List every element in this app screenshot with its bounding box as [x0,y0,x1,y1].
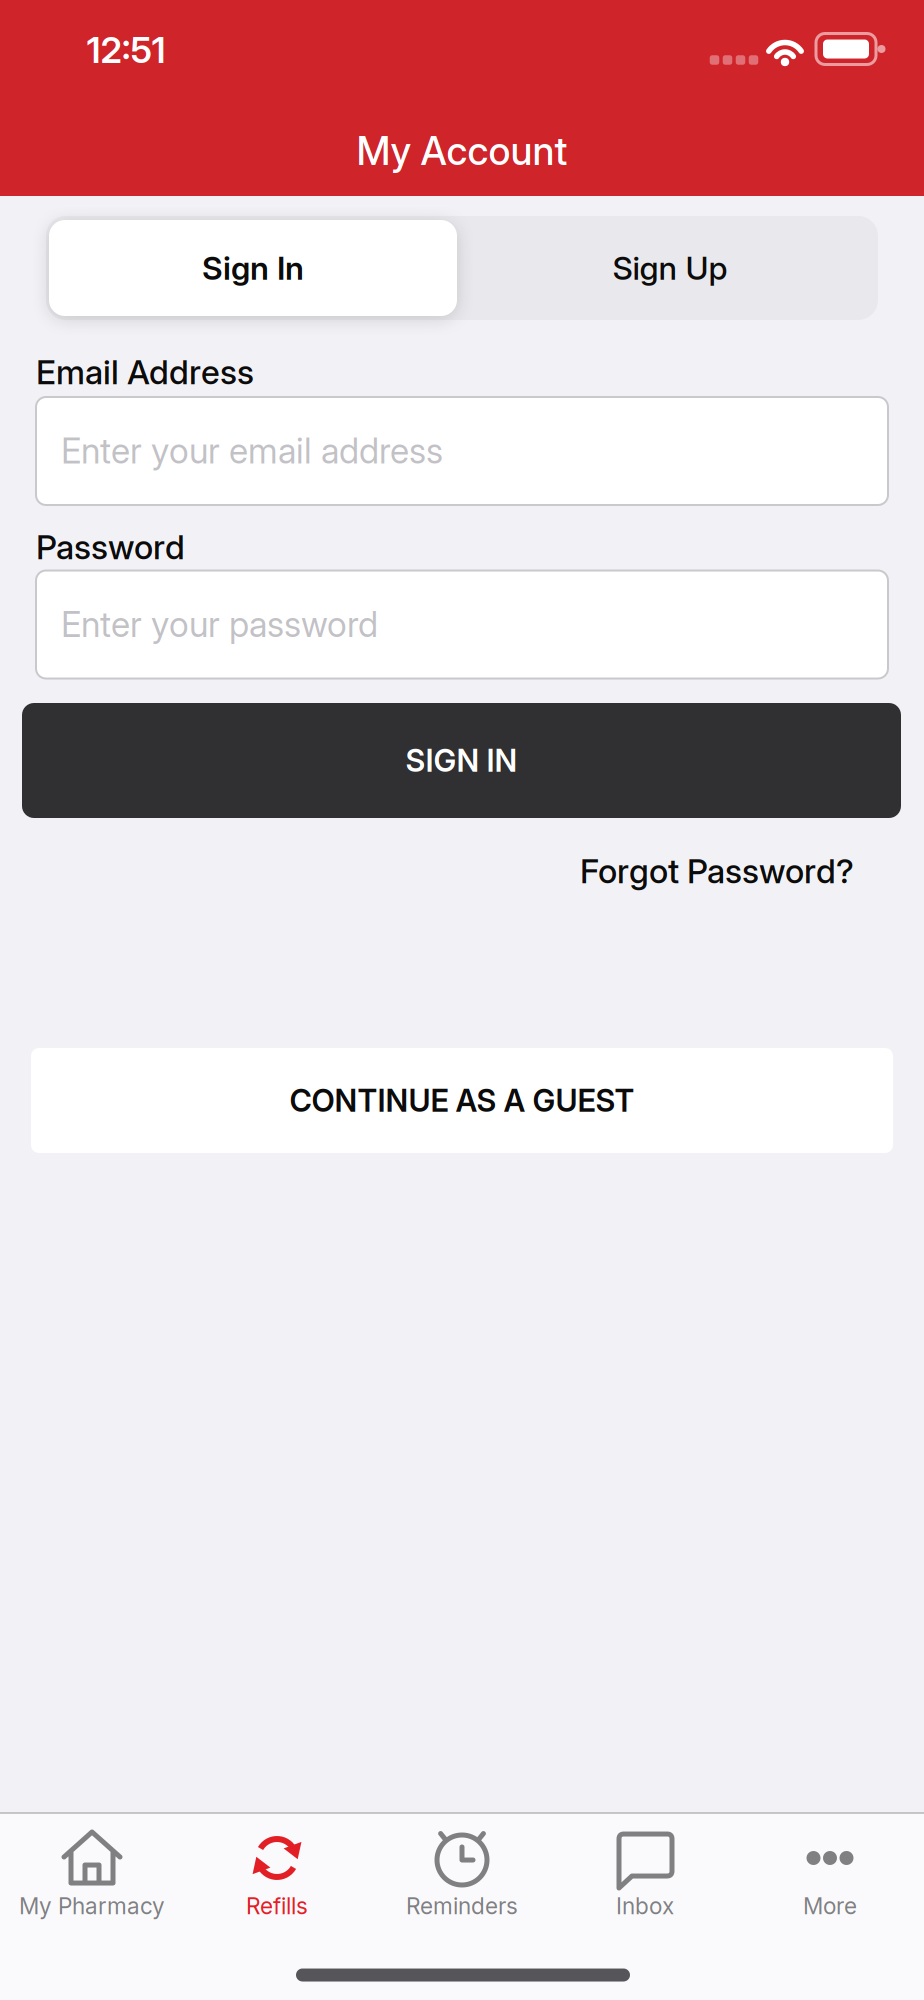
staticText: My Pharmacy [19,1892,165,1920]
staticText: Reminders [406,1892,518,1920]
staticText: More [803,1892,857,1920]
button[interactable]: SIGN IN [22,703,901,818]
staticText: Forgot Password? [580,851,854,891]
staticText: Password [36,527,185,567]
button[interactable]: Forgot Password? [580,851,854,891]
staticText: Email Address [36,352,254,392]
button[interactable]: My Pharmacy [3,1824,181,1932]
staticText: Inbox [616,1892,674,1920]
staticText: Refills [246,1892,308,1920]
staticText: SIGN IN [405,742,517,779]
staticText: 12:51 [86,28,165,72]
button[interactable]: Sign In [49,220,457,316]
button[interactable]: Refills [188,1824,366,1932]
button[interactable]: Inbox [556,1824,734,1932]
staticText: Enter your password [61,603,378,645]
button[interactable]: More [741,1824,919,1932]
staticText: Sign In [202,249,304,287]
staticText: CONTINUE AS A GUEST [289,1082,634,1119]
button[interactable]: Reminders [373,1824,551,1932]
staticText: Sign Up [612,249,727,287]
staticText: Enter your email address [61,430,443,472]
button[interactable]: Sign Up [462,216,878,320]
button[interactable]: CONTINUE AS A GUEST [31,1048,893,1153]
staticText: My Account [356,128,567,174]
